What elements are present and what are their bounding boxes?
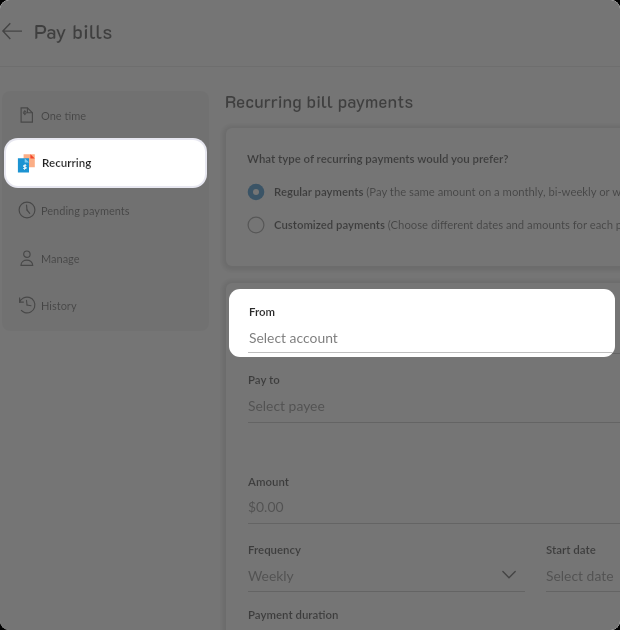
button[interactable]: Open frequency picker	[497, 565, 521, 583]
staticText: One time	[41, 109, 87, 122]
staticText: Pay bills	[34, 19, 113, 44]
staticText: Weekly	[248, 567, 294, 584]
staticText: Amount	[248, 475, 289, 489]
staticText: Manage	[41, 252, 80, 265]
staticText: Customized payments (Choose different da…	[274, 218, 620, 232]
staticText: Pending payments	[41, 204, 130, 217]
button[interactable]: Pending payments	[4, 187, 206, 231]
staticText: Select account	[248, 329, 337, 346]
button[interactable]	[4, 140, 206, 184]
button[interactable]: Back	[0, 16, 28, 47]
staticText: History	[41, 299, 77, 312]
button[interactable]: Regular payments (Pay the same amount on…	[244, 179, 620, 205]
staticText: Select payee	[248, 397, 325, 414]
button[interactable]: History	[4, 282, 206, 326]
staticText: $0.00	[248, 498, 284, 515]
staticText: Payment duration	[248, 608, 339, 622]
button[interactable]: One time	[4, 92, 206, 136]
staticText: $	[23, 163, 27, 170]
staticText: Regular payments (Pay the same amount on…	[274, 185, 620, 199]
staticText: Start date	[546, 543, 596, 557]
staticText: Pay to	[248, 373, 280, 387]
staticText: From	[248, 306, 275, 320]
button[interactable]: $	[4, 138, 207, 188]
staticText: From	[249, 305, 276, 319]
staticText: Recurring bill payments	[225, 90, 414, 112]
button[interactable]: Customized payments (Choose different da…	[244, 212, 620, 238]
staticText: Select date	[546, 567, 614, 584]
button[interactable]: From	[229, 289, 615, 357]
staticText: What type of recurring payments would yo…	[247, 152, 509, 166]
staticText: Recurring	[42, 156, 92, 170]
button[interactable]: Manage	[4, 235, 206, 279]
staticText: Frequency	[248, 543, 302, 557]
staticText: Select account	[249, 329, 338, 346]
